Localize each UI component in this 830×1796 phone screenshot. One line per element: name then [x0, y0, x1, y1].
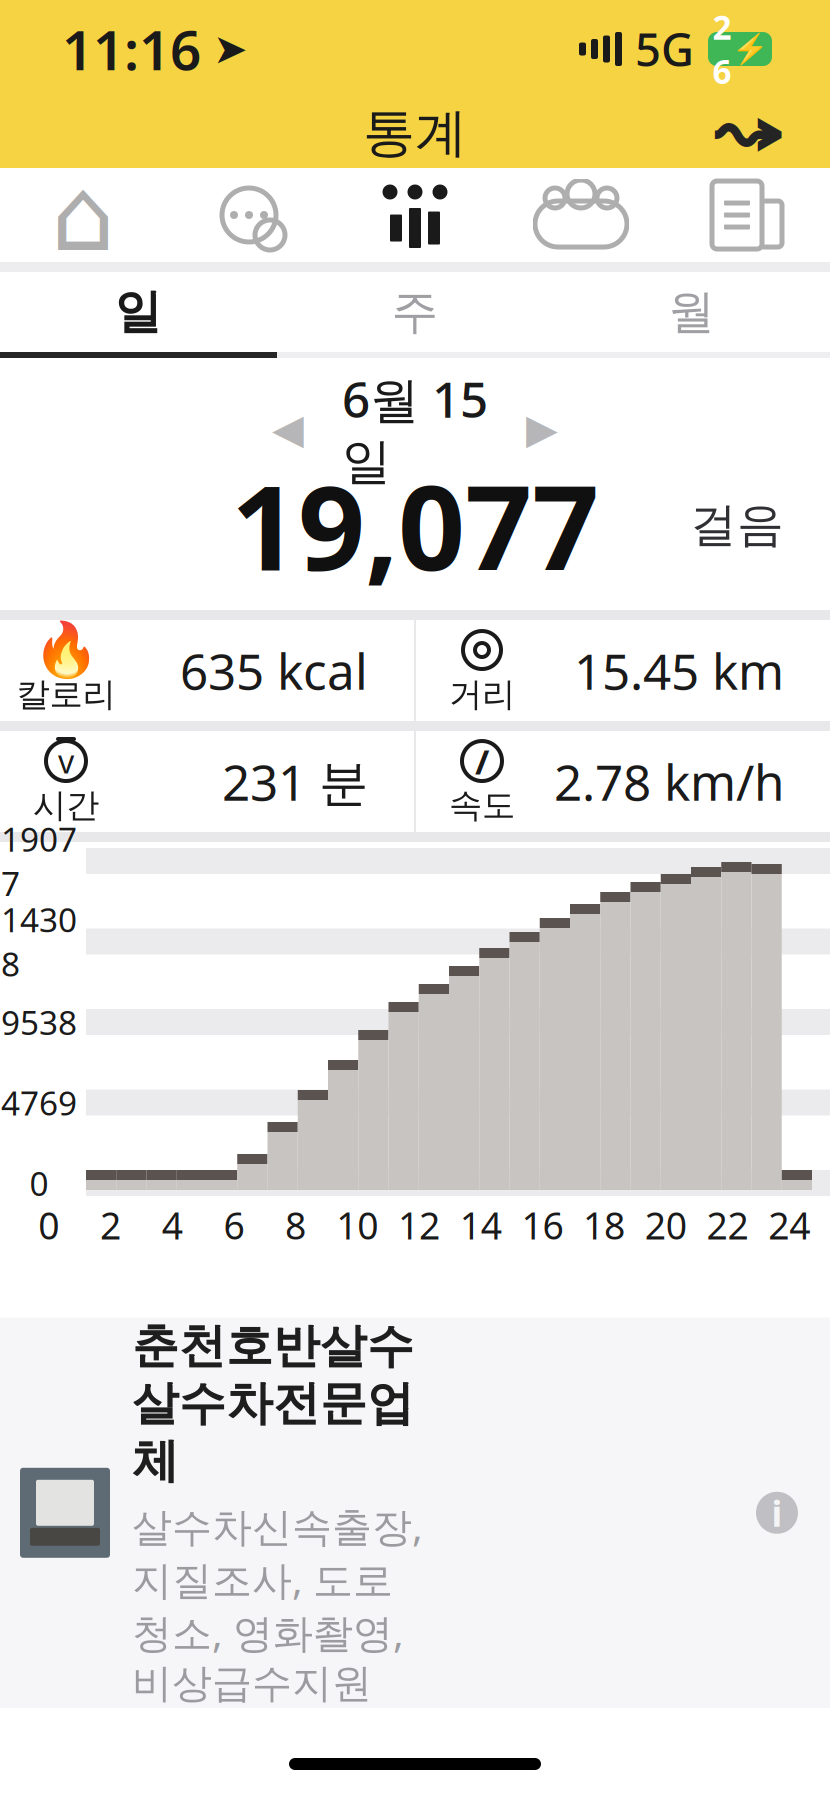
staticText: 14	[460, 1200, 502, 1250]
staticText: 12	[398, 1200, 440, 1250]
staticText: 14308	[1, 897, 77, 986]
staticText: /	[475, 738, 489, 784]
staticText: 2.78 km/h	[554, 749, 784, 814]
staticText: 10	[336, 1200, 378, 1250]
button[interactable]: 다음 날짜	[507, 394, 577, 464]
staticText: 22	[706, 1200, 748, 1250]
staticText: 231 분	[222, 749, 368, 814]
staticText: 시간	[33, 785, 99, 826]
staticText: 거리	[449, 674, 515, 715]
staticText: 6	[223, 1200, 244, 1250]
button[interactable]: 채팅	[166, 168, 332, 262]
staticText: 19,077	[231, 447, 599, 603]
button[interactable]: 공유	[706, 94, 790, 172]
staticText: 2	[100, 1200, 121, 1250]
staticText: 걸음	[690, 496, 784, 554]
button[interactable]: 주	[277, 272, 553, 352]
staticText: 일	[115, 283, 162, 341]
staticText: 635 kcal	[180, 638, 368, 703]
staticText: 18	[583, 1200, 625, 1250]
staticText: 칼로리	[16, 674, 115, 715]
staticText: ⌂	[51, 157, 115, 272]
staticText: i	[771, 1489, 782, 1537]
button[interactable]: 춘천호반살수 살수차전문업체	[0, 1318, 830, 1708]
button[interactable]: 홈	[0, 168, 166, 262]
staticText: ➤	[213, 25, 248, 72]
staticText: 24	[768, 1200, 810, 1250]
staticText: 월	[668, 283, 715, 341]
button[interactable]: 이전 날짜	[253, 394, 323, 464]
staticText: 11:16	[62, 13, 201, 85]
staticText: 살수차신속출장, 지질조사, 도로청소, 영화촬영, 비상급수지원	[132, 1499, 423, 1708]
staticText: 9538	[1, 1000, 77, 1044]
staticText: 19077	[1, 817, 77, 905]
staticText: 15.45 km	[574, 638, 784, 703]
staticText: 26	[712, 5, 731, 93]
staticText: 5G	[635, 19, 694, 79]
staticText: 20	[645, 1200, 687, 1250]
staticText: 16	[521, 1200, 563, 1250]
staticText: ▶	[526, 405, 558, 452]
staticText: 춘천호반살수 살수차전문업체	[132, 1318, 414, 1490]
staticText: ⚡	[731, 32, 768, 66]
staticText: 주	[391, 283, 438, 341]
button[interactable]: 친구	[498, 168, 664, 262]
staticText: 8	[285, 1200, 306, 1250]
button[interactable]: 뉴스	[664, 168, 830, 262]
staticText: v	[58, 740, 74, 782]
staticText: 4769	[1, 1080, 77, 1125]
staticText: ⤳	[709, 103, 786, 163]
staticText: ◀	[272, 405, 304, 452]
button[interactable]: 일	[0, 272, 277, 352]
staticText: 6월 15일	[342, 366, 488, 492]
button[interactable]: 월	[553, 272, 830, 352]
staticText: 통계	[363, 101, 467, 165]
staticText: 속도	[449, 785, 515, 826]
staticText: 4	[162, 1200, 183, 1250]
staticText: 🔥	[33, 620, 99, 680]
staticText: 0	[38, 1200, 59, 1250]
button[interactable]: 통계	[332, 168, 498, 262]
staticText: 0	[29, 1161, 48, 1205]
